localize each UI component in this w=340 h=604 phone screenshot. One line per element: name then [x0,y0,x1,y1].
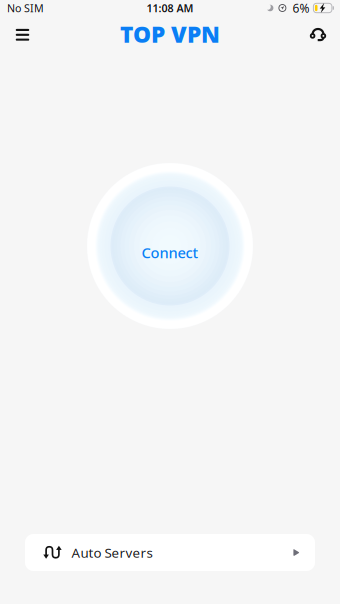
button[interactable]: Connect [87,163,253,329]
staticText: No SIM [7,1,44,15]
button[interactable]: Menu [5,17,39,51]
staticText: 11:08 AM [146,1,193,15]
staticText: TOP VPN [120,19,220,49]
staticText: Auto Servers [71,544,152,561]
staticText: 6% [292,0,309,16]
button[interactable]: Auto Servers [25,534,315,571]
staticText: Connect [141,243,198,262]
button[interactable]: Support [301,17,335,51]
